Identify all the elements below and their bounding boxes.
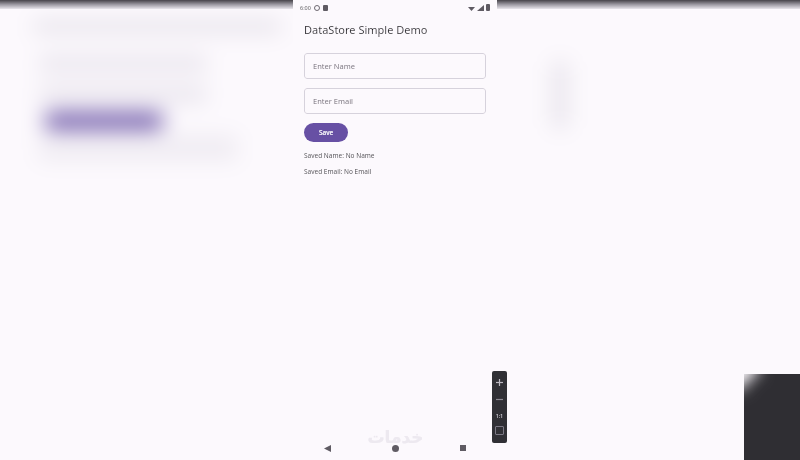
staticText: خدمات (367, 427, 424, 447)
staticText: DataStore Simple Demo (304, 22, 428, 37)
staticText: Saved Email: No Email (304, 167, 372, 176)
button[interactable]: 1:1 (493, 410, 506, 423)
button[interactable]: Home (361, 436, 429, 460)
staticText: Saved Name: No Name (304, 151, 375, 160)
button[interactable]: Zoom in (493, 376, 506, 389)
button[interactable]: Enter Name (304, 53, 486, 79)
button[interactable]: Zoom out (493, 393, 506, 406)
button[interactable]: Recent apps (429, 436, 497, 460)
button[interactable]: Fit to screen (495, 426, 504, 435)
staticText: Save (319, 128, 334, 137)
staticText: 1:1 (496, 413, 504, 420)
staticText: 6:00 (300, 4, 311, 11)
button[interactable]: Save (304, 123, 348, 142)
staticText: Enter Name (313, 61, 355, 71)
button[interactable]: Enter Email (304, 88, 486, 114)
staticText: Enter Email (313, 96, 354, 106)
button[interactable]: Back (293, 436, 361, 460)
